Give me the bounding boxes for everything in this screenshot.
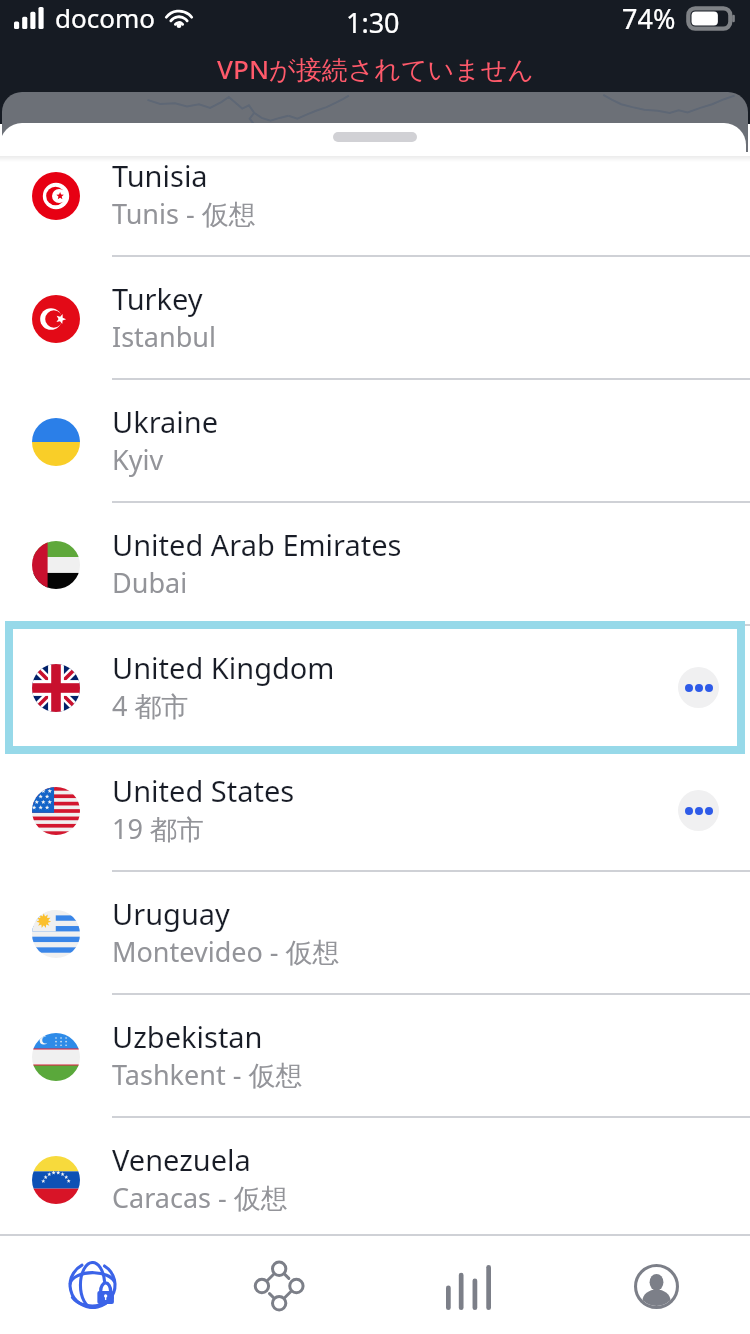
staticText: Dubai [112,564,188,601]
button[interactable]: Venezuela [0,1118,750,1234]
button[interactable]: United Kingdom [0,621,750,754]
staticText: Venezuela [112,1140,251,1179]
button[interactable]: Turkey [0,257,750,380]
button[interactable]: United Arab Emirates [0,503,750,626]
staticText: Tunis - 仮想 [112,195,256,232]
button[interactable]: Uzbekistan [0,995,750,1118]
button[interactable]: Uruguay [0,872,750,995]
staticText: 4 都市 [112,687,189,724]
button[interactable]: Account [562,1236,750,1334]
staticText: Montevideo - 仮想 [112,933,340,970]
staticText: United Kingdom [112,648,335,687]
staticText: Uruguay [112,894,230,933]
staticText: Kyiv [112,441,164,478]
button[interactable]: United States [0,749,750,872]
staticText: Ukraine [112,402,219,441]
staticText: Uzbekistan [112,1017,263,1056]
staticText: Tashkent - 仮想 [112,1056,303,1093]
button[interactable]: Ukraine [0,380,750,503]
button[interactable]: More options [678,790,719,831]
button[interactable]: VPN [0,1236,187,1334]
staticText: Istanbul [112,318,216,355]
staticText: docomo [55,0,155,35]
button[interactable]: Tunisia [0,156,750,257]
staticText: United Arab Emirates [112,525,402,564]
staticText: 19 都市 [112,810,204,847]
staticText: 1:30 [346,4,400,41]
staticText: Caracas - 仮想 [112,1179,288,1216]
staticText: VPNが接続されていません [217,51,534,87]
button[interactable]: Network [187,1236,374,1334]
staticText: United States [112,771,295,810]
button[interactable]: Statistics [374,1236,562,1334]
staticText: Turkey [112,279,203,318]
staticText: Tunisia [112,156,208,195]
button[interactable]: More options [678,667,719,708]
staticText: 74% [622,0,676,37]
